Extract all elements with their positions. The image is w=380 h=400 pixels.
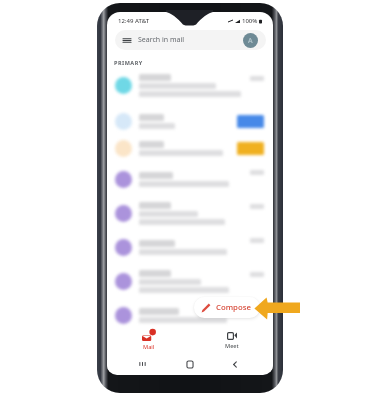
staticText: 100%: [242, 17, 258, 25]
button[interactable]: Meet: [190, 328, 273, 356]
button[interactable]: [107, 265, 273, 298]
button[interactable]: [107, 136, 273, 160]
other: Home: [186, 361, 194, 368]
staticText: Meet: [225, 342, 239, 350]
staticText: PRIMARY: [114, 59, 143, 66]
other: Recent apps: [139, 361, 146, 367]
button[interactable]: Recent apps: [133, 356, 151, 372]
other: Back: [232, 361, 238, 368]
button[interactable]: [107, 69, 273, 102]
staticText: Compose: [216, 302, 251, 313]
button[interactable]: [107, 197, 273, 230]
button[interactable]: [107, 163, 273, 196]
button[interactable]: [107, 299, 273, 332]
button[interactable]: [107, 231, 273, 264]
staticText: Search in mail: [138, 35, 185, 45]
button[interactable]: Mail: [107, 328, 190, 356]
staticText: Mail: [143, 343, 155, 351]
button[interactable]: [107, 109, 273, 133]
staticText: A: [248, 36, 253, 46]
other: Open navigation menu: [123, 38, 131, 43]
button[interactable]: Home: [181, 356, 199, 372]
staticText: 12:49 AT&T: [118, 17, 150, 25]
button[interactable]: Compose: [194, 297, 260, 318]
button[interactable]: Back: [226, 356, 244, 372]
button[interactable]: Open navigation menu: [115, 30, 266, 50]
